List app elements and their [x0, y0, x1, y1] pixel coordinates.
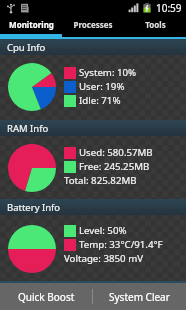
staticText: Level: 50%	[79, 224, 127, 237]
staticText: Cpu Info	[7, 41, 46, 54]
button[interactable]: Monitoring	[0, 15, 62, 34]
staticText: Used: 580.57MB	[79, 146, 153, 159]
staticText: User: 19%	[79, 80, 125, 93]
staticText: System Clear	[109, 290, 170, 304]
staticText: RAM Info	[7, 122, 49, 135]
other: Battery charging	[141, 2, 153, 14]
staticText: Total: 825.82MB	[64, 174, 137, 187]
staticText: Tools	[145, 19, 166, 30]
staticText: Voltage: 3850 mV	[64, 252, 144, 265]
staticText: 10:59	[156, 1, 182, 15]
staticText: Monitoring	[9, 19, 54, 30]
staticText: Free: 245.25MB	[79, 160, 150, 173]
button[interactable]: Quick Boost	[0, 283, 92, 310]
other: Saved file	[19, 2, 31, 14]
button[interactable]: Tools	[124, 15, 186, 34]
staticText: Idle: 71%	[79, 94, 121, 107]
staticText: Processes	[73, 19, 113, 30]
staticText: Quick Boost	[18, 290, 75, 304]
button[interactable]: System Clear	[93, 283, 186, 310]
other: USB connected	[5, 2, 17, 14]
staticText: Battery Info	[7, 201, 61, 214]
staticText: System: 10%	[79, 66, 137, 79]
other: Signal strength	[128, 2, 140, 14]
staticText: Temp: 33°C/91.4°F	[79, 238, 163, 251]
button[interactable]: Processes	[62, 15, 124, 34]
